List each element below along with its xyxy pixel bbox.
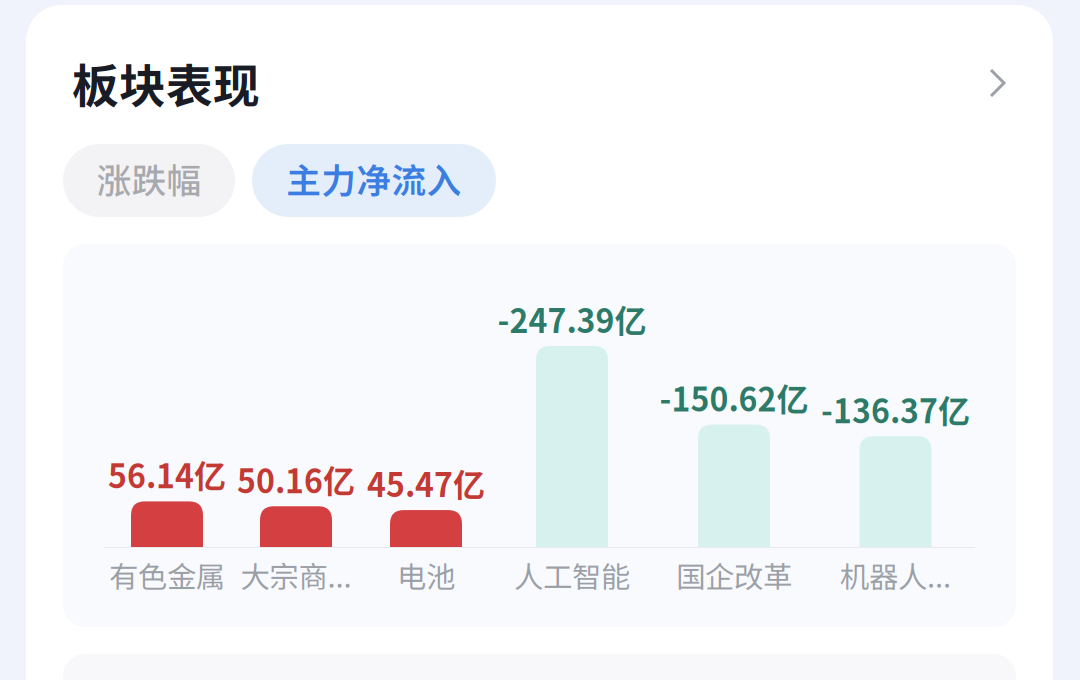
staticText: 大宗商... [240,554,351,596]
button[interactable]: 人工智能 -247.39亿 [490,266,654,586]
staticText: 人工智能 [514,554,630,596]
button[interactable]: 电池 45.47亿 [362,266,490,586]
button[interactable]: 机器人... -136.37亿 [814,266,977,586]
button[interactable]: 大宗商... 50.16亿 [230,266,362,586]
staticText: 涨跌幅 [96,153,201,204]
staticText: 45.47亿 [367,460,485,506]
button[interactable]: 主力净流入 [252,144,496,217]
staticText: 主力净流入 [286,153,461,204]
staticText: 50.16亿 [237,456,355,502]
staticText: 机器人... [840,554,951,596]
staticText: 56.14亿 [108,451,226,497]
button[interactable]: 涨跌幅 [63,144,235,217]
staticText: 国企改革 [676,554,792,596]
staticText: -136.37亿 [821,386,970,432]
staticText: 板块表现 [72,49,260,117]
button[interactable]: 有色金属 56.14亿 [104,266,230,586]
staticText: -150.62亿 [659,374,808,421]
button[interactable]: 国企改革 -150.62亿 [654,266,814,586]
staticText: -247.39亿 [497,296,646,342]
staticText: 电池 [397,554,455,596]
button[interactable]: 板块表现 [26,51,1053,115]
staticText: 有色金属 [109,554,225,596]
